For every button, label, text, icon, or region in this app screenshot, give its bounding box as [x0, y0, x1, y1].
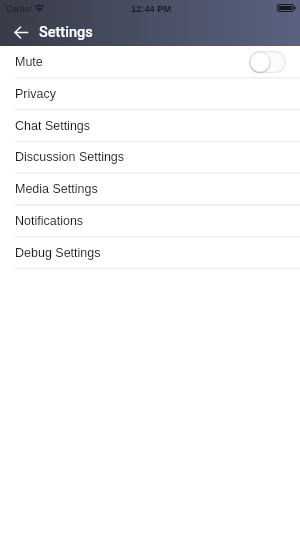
staticText: Privacy	[15, 87, 56, 101]
staticText: Mute	[15, 55, 43, 69]
button[interactable]: Navigate up	[8, 19, 34, 45]
button[interactable]: Media Settings	[0, 173, 300, 205]
staticText: 12:44 PM	[131, 4, 172, 14]
button[interactable]: Privacy	[0, 78, 300, 110]
staticText: Debug Settings	[15, 246, 101, 260]
staticText: Settings	[39, 24, 93, 41]
button[interactable]: Mute	[0, 46, 300, 78]
staticText: Chat Settings	[15, 119, 91, 133]
staticText: Notifications	[15, 214, 84, 228]
staticText: Discussion Settings	[15, 150, 125, 164]
button[interactable]: Discussion Settings	[0, 141, 300, 173]
button[interactable]: Chat Settings	[0, 110, 300, 142]
staticText: Carrier	[6, 4, 32, 13]
staticText: Media Settings	[15, 182, 98, 196]
button[interactable]: Debug Settings	[0, 237, 300, 269]
button[interactable]: Notifications	[0, 205, 300, 237]
